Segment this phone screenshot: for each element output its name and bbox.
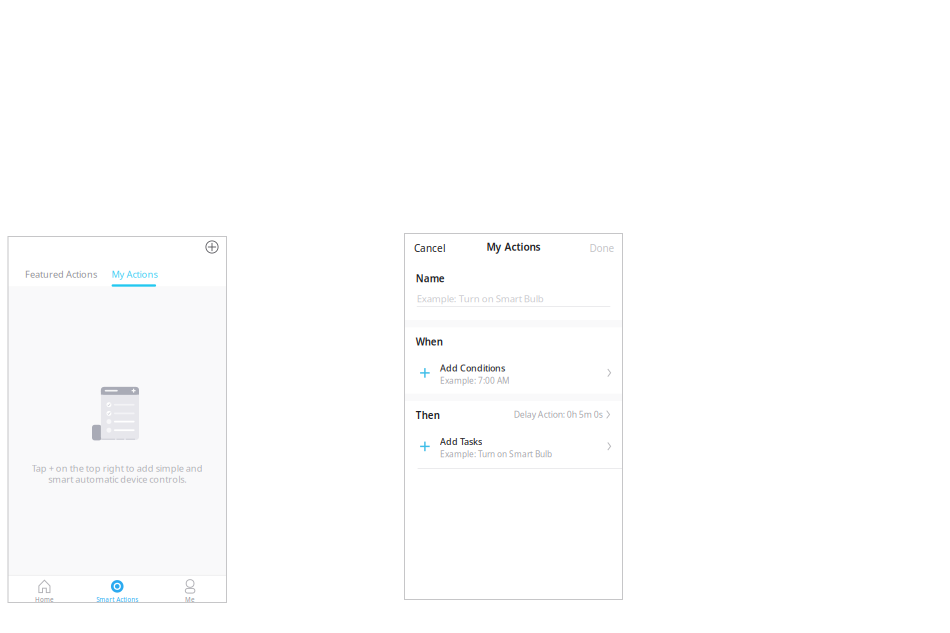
- staticText: Cancel: [414, 241, 446, 255]
- staticText: Smart Actions: [96, 595, 138, 604]
- staticText: Me: [185, 595, 195, 604]
- button[interactable]: Add Conditions: [404, 356, 622, 391]
- staticText: My Actions: [112, 268, 158, 280]
- staticText: smart automatic device controls.: [48, 473, 186, 485]
- staticText: Add Tasks: [440, 435, 482, 448]
- button[interactable]: Add Tasks: [404, 429, 622, 464]
- button[interactable]: Me: [154, 576, 226, 602]
- button[interactable]: My Actions: [112, 268, 158, 288]
- staticText: Featured Actions: [25, 268, 97, 280]
- staticText: Example: 7:00 AM: [440, 375, 509, 386]
- staticText: Add Conditions: [440, 362, 505, 374]
- button[interactable]: Smart Actions: [81, 576, 154, 602]
- staticText: Then: [416, 409, 440, 422]
- button[interactable]: Cancel: [414, 240, 464, 256]
- button[interactable]: Done: [564, 240, 614, 256]
- button[interactable]: Add action: [199, 235, 225, 258]
- staticText: Example: Turn on Smart Bulb: [440, 448, 552, 460]
- staticText: Done: [589, 241, 614, 255]
- button[interactable]: Featured Actions: [25, 268, 105, 282]
- button[interactable]: Delay Action: 0h 5m 0s: [497, 409, 610, 420]
- staticText: Example: Turn on Smart Bulb: [417, 292, 544, 305]
- button[interactable]: Home: [8, 576, 81, 602]
- staticText: Delay Action: 0h 5m 0s: [514, 409, 603, 420]
- staticText: Name: [416, 272, 445, 285]
- staticText: Tap + on the top right to add simple and: [32, 462, 203, 474]
- staticText: When: [416, 335, 443, 348]
- staticText: Home: [35, 595, 54, 604]
- staticText: My Actions: [486, 240, 540, 254]
